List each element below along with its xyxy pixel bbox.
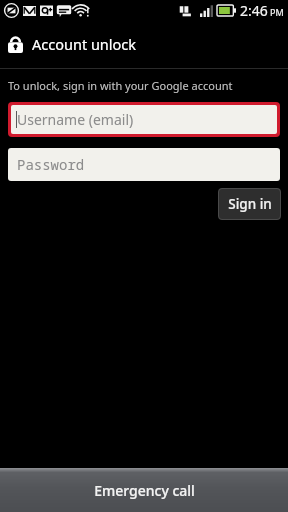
staticText: Username (email) — [17, 110, 134, 129]
staticText: 2:46 — [240, 1, 268, 20]
staticText: Account unlock — [32, 34, 137, 54]
staticText: PM — [270, 6, 284, 18]
staticText: Emergency call — [94, 481, 195, 500]
staticText: To unlock, sign in with your Google acco… — [8, 78, 233, 93]
staticText: Password — [17, 155, 85, 174]
button[interactable]: Emergency call — [0, 468, 288, 512]
button[interactable]: Username (email) — [8, 102, 280, 137]
button[interactable]: Sign in — [218, 188, 281, 220]
button[interactable]: Password — [8, 148, 280, 181]
staticText: Sign in — [228, 195, 272, 213]
